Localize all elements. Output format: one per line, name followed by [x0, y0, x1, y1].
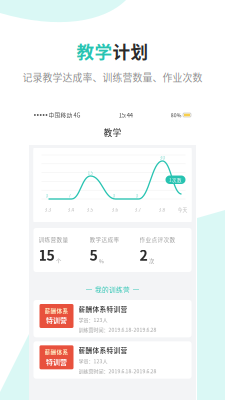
staticText: 计划 — [112, 38, 148, 63]
staticText: 30 — [159, 154, 165, 161]
staticText: 0 — [45, 192, 48, 199]
staticText: 薪酬体系 — [44, 307, 68, 315]
staticText: 7 — [68, 192, 71, 199]
staticText: 3.8 — [158, 206, 165, 213]
staticText: 3.7 — [134, 206, 141, 213]
staticText: 3.3 — [44, 206, 51, 213]
staticText: 15:44 — [119, 111, 133, 119]
staticText: 特训营 — [46, 357, 67, 367]
staticText: 80% — [171, 111, 182, 119]
staticText: 5 — [89, 244, 97, 265]
staticText: 15 — [38, 244, 54, 265]
staticText: 特训营 — [46, 315, 67, 325]
staticText: 中国移动 4G — [48, 111, 80, 119]
staticText: 训练营数量 — [38, 235, 68, 243]
button[interactable]: 教学 — [29, 120, 196, 145]
staticText: 今天 — [177, 206, 187, 213]
staticText: 0 — [112, 192, 115, 199]
staticText: 教学 — [103, 126, 121, 139]
staticText: 教学达成率 — [89, 235, 119, 243]
staticText: 训练营时间：2019.6.18-2019.6.28 — [78, 367, 156, 375]
staticText: 0 — [135, 192, 138, 199]
staticText: 薪酬体系特训营 — [78, 345, 127, 355]
button[interactable]: 薪酬体系 — [33, 300, 191, 337]
staticText: 薪酬体系特训营 — [78, 304, 127, 314]
staticText: 3.4 — [67, 206, 74, 213]
staticText: % — [99, 257, 104, 265]
button[interactable]: 薪酬体系 — [33, 341, 191, 379]
staticText: 记录教学达成率、训练营数量、作业次数 — [22, 70, 202, 84]
staticText: 个 — [56, 257, 61, 265]
staticText: 薪酬体系 — [44, 348, 68, 356]
staticText: 3.5 — [86, 206, 93, 213]
staticText: 训练营时间：2019.6.18-2019.6.28 — [78, 326, 156, 333]
staticText: 学员：123人 — [78, 316, 107, 323]
staticText: 3.6 — [111, 206, 118, 213]
staticText: 15 — [87, 169, 93, 176]
staticText: 1次数 — [169, 176, 182, 183]
staticText: 2 — [139, 244, 147, 265]
staticText: 作业点评次数 — [139, 235, 175, 243]
staticText: 教学 — [76, 38, 112, 63]
staticText: 我的训练营 — [95, 285, 130, 294]
staticText: 学员：123人 — [78, 357, 107, 365]
staticText: 次 — [149, 257, 154, 265]
